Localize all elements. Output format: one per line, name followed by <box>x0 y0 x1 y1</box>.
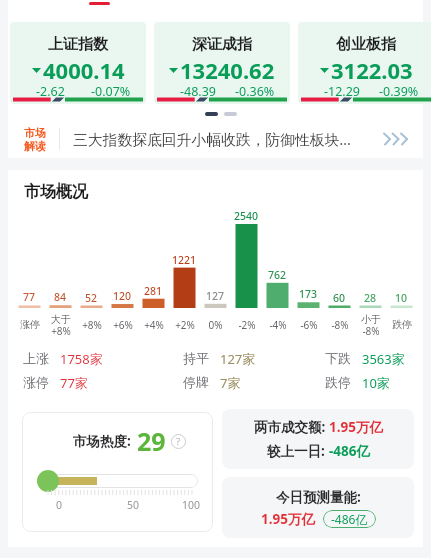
staticText: 1221 <box>172 253 197 267</box>
staticText: 0 <box>56 498 63 512</box>
staticText: 上涨 <box>23 350 49 366</box>
staticText: 市场 解读 <box>24 126 46 153</box>
staticText: -0.07% <box>91 83 131 100</box>
staticText: 100 <box>182 498 201 512</box>
staticText: 60 <box>333 291 346 305</box>
staticText: 三大指数探底回升小幅收跌，防御性板块… <box>73 129 352 149</box>
staticText: 281 <box>144 284 163 298</box>
staticText: 127 <box>206 289 225 303</box>
staticText: 52 <box>85 291 98 305</box>
staticText: -48.39 <box>180 83 216 100</box>
staticText: 3122.03 <box>331 55 413 85</box>
staticText: -0.36% <box>235 83 275 100</box>
staticText: -12.29 <box>324 83 360 100</box>
staticText: 1.95万亿 <box>329 418 383 436</box>
staticText: 173 <box>299 287 318 301</box>
staticText: ? <box>176 435 181 448</box>
staticText: +8% <box>82 318 102 332</box>
button[interactable]: 创业板指 <box>298 22 431 104</box>
button[interactable]: 市场热度: <box>22 412 213 532</box>
staticText: 10 <box>395 291 408 305</box>
staticText: 77 <box>23 290 36 304</box>
staticText: 28 <box>364 291 377 305</box>
staticText: 1.95万亿 <box>261 510 315 528</box>
staticText: 50 <box>127 498 140 512</box>
staticText: 持平 <box>183 350 209 366</box>
staticText: 停牌 <box>183 374 209 390</box>
staticText: +2% <box>175 318 195 332</box>
staticText: 84 <box>54 290 67 304</box>
staticText: 涨停 <box>23 374 49 390</box>
button[interactable]: 市场 解读 <box>8 120 423 158</box>
staticText: 4000.14 <box>43 55 125 85</box>
staticText: 小于 -8% <box>361 313 381 338</box>
staticText: 市场热度: <box>73 432 131 450</box>
staticText: -4% <box>269 318 287 332</box>
staticText: -2% <box>238 318 256 332</box>
staticText: 77家 <box>60 374 88 392</box>
staticText: 13240.62 <box>180 55 275 85</box>
staticText: 跌停 <box>325 374 351 390</box>
staticText: 29 <box>137 424 166 458</box>
staticText: -2.62 <box>36 83 65 100</box>
staticText: 创业板指 <box>336 35 396 54</box>
button[interactable]: 深证成指 <box>154 22 290 104</box>
staticText: -486亿 <box>329 442 370 460</box>
staticText: 2540 <box>234 209 259 223</box>
staticText: 1758家 <box>60 350 103 368</box>
staticText: 0% <box>208 318 223 332</box>
staticText: +4% <box>144 318 164 332</box>
staticText: 深证成指 <box>192 35 252 54</box>
staticText: -486亿 <box>331 511 368 527</box>
staticText: 120 <box>113 289 132 303</box>
button[interactable]: 上证指数 <box>10 22 146 104</box>
staticText: -6% <box>300 318 318 332</box>
staticText: 3563家 <box>362 350 405 368</box>
staticText: 7家 <box>220 374 241 392</box>
staticText: 市场概况 <box>24 182 88 202</box>
button[interactable]: 今日预测量能: <box>222 477 414 538</box>
staticText: 较上一日: <box>267 442 329 460</box>
staticText: 10家 <box>362 374 390 392</box>
staticText: 上证指数 <box>48 35 108 54</box>
staticText: 今日预测量能: <box>276 488 361 506</box>
staticText: 涨停 <box>20 318 40 331</box>
staticText: 127家 <box>220 350 256 368</box>
staticText: 下跌 <box>325 350 351 366</box>
staticText: 跌停 <box>392 318 412 331</box>
staticText: -0.39% <box>379 83 419 100</box>
staticText: 两市成交额: <box>254 418 329 436</box>
staticText: -8% <box>331 318 349 332</box>
staticText: +6% <box>113 318 133 332</box>
button[interactable]: 两市成交额: <box>222 409 414 469</box>
staticText: 762 <box>268 268 287 282</box>
staticText: 大于 +8% <box>51 313 71 338</box>
